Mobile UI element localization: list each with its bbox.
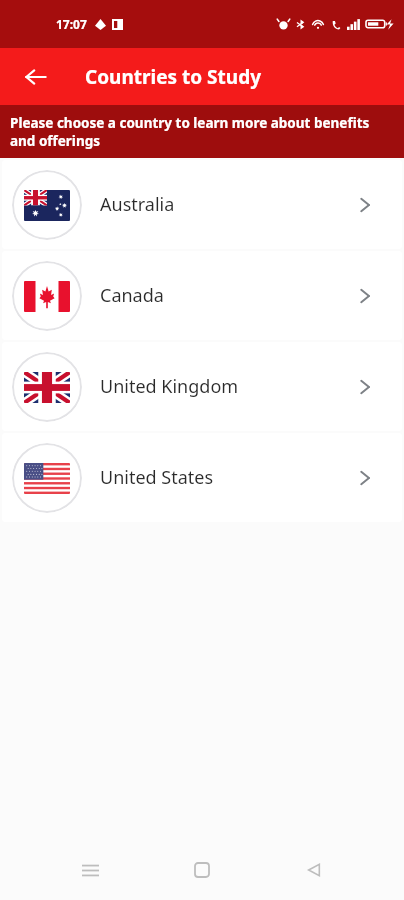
button[interactable]: Back: [14, 55, 58, 99]
button[interactable]: United Kingdom: [2, 342, 402, 431]
button[interactable]: Back: [292, 848, 336, 892]
staticText: Canada: [100, 283, 164, 308]
button[interactable]: Home: [180, 848, 224, 892]
button[interactable]: Australia: [2, 160, 402, 249]
staticText: Australia: [100, 192, 175, 217]
staticText: United Kingdom: [100, 374, 239, 399]
button[interactable]: Recent apps: [68, 848, 112, 892]
staticText: 17:07: [56, 16, 87, 32]
staticText: Please choose a country to learn more ab…: [10, 114, 392, 150]
button[interactable]: Canada: [2, 251, 402, 340]
staticText: Countries to Study: [85, 64, 261, 90]
staticText: United States: [100, 465, 214, 490]
button[interactable]: United States: [2, 433, 402, 522]
